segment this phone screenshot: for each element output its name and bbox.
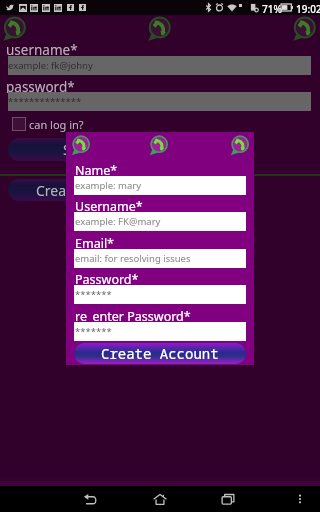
staticText: Create Account [101, 344, 219, 363]
staticText: Create account [36, 181, 135, 200]
button[interactable]: Recent apps [212, 486, 244, 512]
staticText: 71% [262, 2, 282, 16]
staticText: ************** [8, 95, 82, 108]
staticText: Username* [75, 198, 143, 212]
staticText: example: mary [75, 179, 142, 192]
button[interactable]: Create account [8, 179, 162, 201]
button[interactable]: Sign in [8, 138, 162, 161]
staticText: Email* [75, 235, 114, 249]
staticText: can log in? [29, 117, 84, 132]
button[interactable]: ******* [74, 322, 246, 341]
button[interactable]: Home [144, 486, 176, 512]
staticText: Sign in [63, 140, 108, 159]
staticText: example: fk@johny [8, 59, 93, 72]
button[interactable]: More options [290, 486, 310, 512]
staticText: re_enter Password* [75, 308, 191, 322]
staticText: username* [6, 41, 78, 56]
staticText: Name* [75, 162, 118, 176]
staticText: ******* [75, 288, 112, 301]
button[interactable]: Create Account [74, 343, 246, 364]
staticText: example: FK@mary [75, 215, 161, 228]
staticText: Password* [75, 271, 139, 285]
staticText: 19:02 [296, 2, 320, 16]
button[interactable]: ************** [8, 92, 311, 111]
button[interactable]: email: for resolving issues [74, 249, 246, 268]
button[interactable]: example: mary [74, 176, 246, 195]
staticText: ******* [75, 325, 112, 338]
button[interactable]: Back [74, 486, 106, 512]
button[interactable]: example: FK@mary [74, 212, 246, 231]
button[interactable]: ******* [74, 285, 246, 304]
staticText: password* [6, 78, 75, 93]
staticText: email: for resolving issues [75, 252, 191, 265]
button[interactable]: can log in? [12, 116, 84, 132]
button[interactable]: example: fk@johny [8, 56, 311, 75]
